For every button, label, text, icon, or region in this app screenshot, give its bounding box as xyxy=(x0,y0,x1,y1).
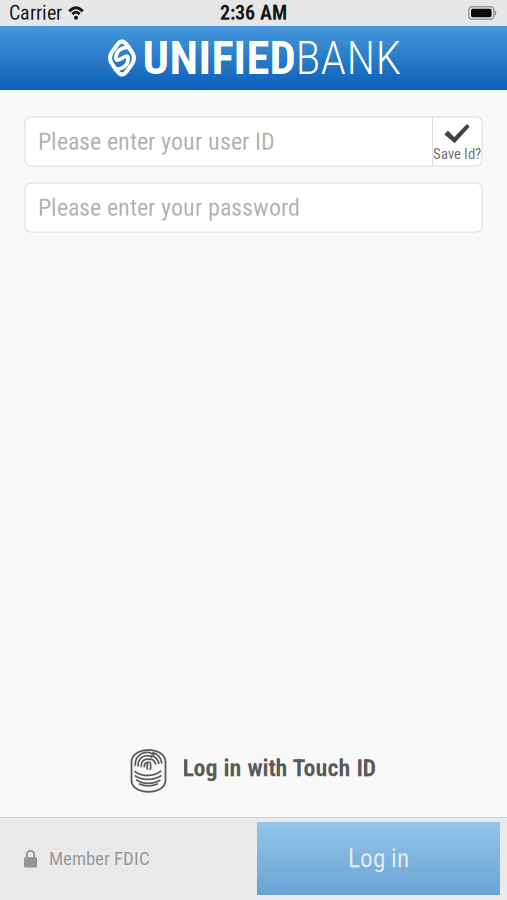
staticText: Log in with Touch ID xyxy=(182,754,376,782)
button[interactable]: Save Id xyxy=(432,117,482,166)
staticText: BANK xyxy=(295,31,401,85)
staticText: Save Id? xyxy=(433,145,481,163)
staticText: Member FDIC xyxy=(49,848,150,869)
button[interactable]: Log in with Touch ID xyxy=(130,741,376,795)
button[interactable]: Log in xyxy=(257,822,500,895)
staticText: Please enter your user ID xyxy=(38,127,275,155)
staticText: UNIFIED xyxy=(142,31,295,85)
staticText: Please enter your password xyxy=(38,193,300,221)
staticText: 2:36 AM xyxy=(220,1,287,25)
staticText: Carrier xyxy=(9,1,62,25)
staticText: Log in xyxy=(348,844,409,873)
